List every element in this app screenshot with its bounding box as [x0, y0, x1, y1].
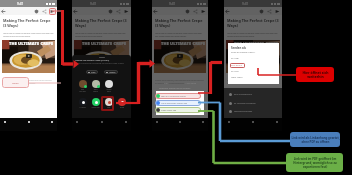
button[interactable]: WhatsApp — [90, 98, 101, 108]
staticText: Add a Messenger contact link — [161, 102, 188, 105]
button[interactable]: Link wird als Linkanhang gesetzt, ohne P… — [290, 132, 340, 147]
button[interactable]: Hier öffnet sich weiterhin — [296, 67, 334, 82]
staticText: Making The Perfect Crepe (3 Ways) — [75, 59, 110, 62]
button[interactable]: Site security — [259, 9, 264, 14]
button[interactable]: Copy — [86, 70, 98, 74]
staticText: Zu Favoriten hinzufügen — [234, 102, 256, 105]
button[interactable]: Salt. Aurora — [103, 98, 114, 110]
button[interactable]: Site security — [185, 9, 190, 14]
button[interactable]: Send to device — [124, 9, 129, 14]
button[interactable]: Salt Aurora app — [101, 96, 114, 111]
button[interactable]: Share — [267, 9, 272, 14]
staticText: Crepes are a delicate, thin pancake that… — [75, 79, 128, 85]
staticText: https://cooking.co.uk/making-the-perfect… — [75, 62, 124, 65]
staticText: Crepe Maker app — [161, 109, 177, 112]
staticText: Crepes are a delicate, thin pancake that… — [227, 79, 279, 85]
staticText: Learn how to make the perfect crepe ever… — [155, 32, 205, 38]
button[interactable]: Back — [0, 8, 7, 15]
button[interactable]: Lisa McCann — [77, 80, 88, 92]
button[interactable]: Griffin Blitz — [103, 80, 114, 92]
button[interactable]: Site security — [108, 9, 113, 14]
button[interactable]: Share — [42, 9, 47, 14]
staticText: Senden als — [231, 46, 246, 50]
button[interactable]: Grab — [116, 98, 127, 108]
button[interactable]: Send to device — [275, 9, 280, 14]
staticText: Learn how to make the perfect crepe ever… — [227, 32, 279, 38]
staticText: Y! Yahoo — [79, 106, 86, 108]
staticText: THE ULTIMATE CREPE — [9, 41, 54, 46]
button[interactable]: Back — [152, 8, 159, 15]
staticText: Profil an Google Nest h. — [231, 51, 256, 54]
staticText: Learn how to make the perfect crepe ever… — [75, 32, 128, 38]
button[interactable]: Gina Sigrid — [90, 80, 101, 92]
staticText: Link wird im PDF geöffnet (im Hintergrun… — [293, 157, 337, 169]
button[interactable]: Teilen — [2, 77, 29, 88]
button[interactable]: Send to device — [201, 9, 206, 14]
button[interactable]: Send to device — [50, 9, 55, 14]
staticText: THE ULTIMATE CREPE — [161, 41, 206, 46]
staticText: Nearby — [109, 71, 116, 74]
button[interactable]: PDF-Druck — [230, 63, 245, 68]
staticText: PC-Link — [231, 70, 239, 73]
staticText: PC-Mail — [231, 57, 239, 60]
staticText: Salt. Aurora — [106, 106, 112, 110]
staticText: Nearby Share — [184, 82, 197, 85]
staticText: Gina Sigrid — [93, 88, 98, 92]
button[interactable]: Zum Startbildschirm — [229, 91, 273, 98]
staticText: 9:41 — [90, 2, 97, 6]
staticText: WhatsApp — [91, 106, 100, 108]
staticText: Grab — [120, 106, 124, 108]
staticText: Lisa McCann — [79, 88, 86, 92]
button[interactable]: Seiteninformationen — [229, 108, 273, 115]
staticText: 9:41 — [242, 2, 249, 6]
staticText: Open with another app to continue — [159, 87, 191, 90]
button[interactable]: Back — [224, 8, 231, 15]
staticText: Crepes are a delicate, thin pancake that… — [3, 79, 54, 85]
button[interactable]: Zu Favoriten hinzufügen — [229, 100, 273, 107]
staticText: Griffin Blitz — [106, 88, 112, 92]
button[interactable]: Link wird im PDF geöffnet (im Hintergrun… — [286, 153, 343, 172]
staticText: Mehr Mails — [231, 76, 243, 79]
staticText: 9:41 — [169, 2, 176, 6]
staticText: Making The Perfect Crepe (3 Ways) — [155, 18, 205, 28]
button[interactable]: Nearby — [104, 70, 118, 74]
staticText: Learn how to make the perfect crepe ever… — [3, 32, 54, 38]
staticText: Copy — [164, 82, 169, 85]
staticText: THE ULTIMATE CREPE — [234, 41, 279, 46]
staticText: Making The Perfect Crepe (3 Ways) — [3, 18, 54, 28]
button[interactable]: Add a Messenger contact link — [155, 100, 201, 106]
staticText: 9:41 — [17, 2, 24, 6]
staticText: PDF-Druck — [231, 64, 242, 67]
button[interactable]: Crepe Maker app — [155, 107, 201, 113]
button[interactable]: Back — [72, 8, 79, 15]
button[interactable]: Y! Yahoo — [77, 98, 88, 108]
staticText: Zum Startbildschirm — [234, 93, 253, 96]
staticText: THE ULTIMATE CREPE — [82, 41, 127, 46]
button[interactable]: Site security — [34, 9, 39, 14]
staticText: Crepes are a delicate, thin pancake that… — [155, 79, 205, 85]
staticText: Hier öffnet sich weiterhin — [302, 70, 329, 79]
staticText: Seiteninformationen — [234, 110, 253, 113]
button[interactable]: Share — [193, 9, 198, 14]
staticText: Copy — [91, 71, 96, 74]
staticText: Link wird als Linkanhang gesetzt, ohne P… — [291, 136, 340, 144]
staticText: Making The Perfect Crepe (3 Ways) — [227, 18, 279, 28]
button[interactable]: Share — [116, 9, 121, 14]
staticText: Send to a WhatsApp contact — [161, 95, 186, 98]
staticText: Teilen — [12, 81, 19, 84]
button[interactable]: Send to a WhatsApp contact — [155, 93, 201, 99]
staticText: Making The Perfect Crepe (3 Ways) — [75, 18, 128, 28]
